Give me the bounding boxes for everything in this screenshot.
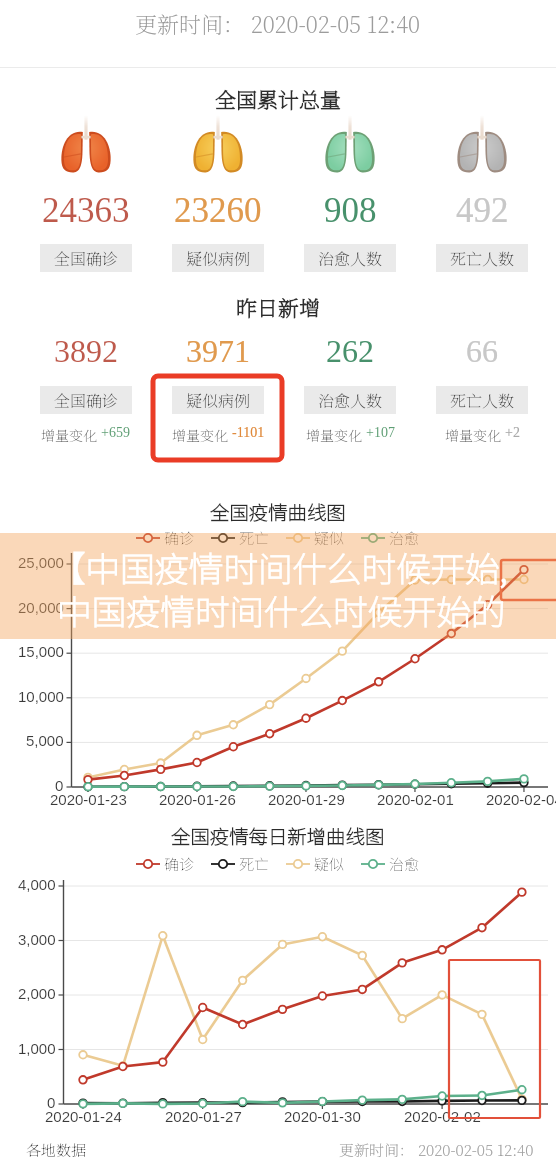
staticText: 治愈 <box>389 527 420 549</box>
staticText: +107 <box>366 425 395 441</box>
staticText: 死亡人数 <box>450 247 515 270</box>
staticText: 2020-01-27 <box>165 1108 242 1125</box>
staticText: 更新时间： 2020-02-05 12:40 <box>135 8 421 40</box>
staticText: 2020-01-26 <box>159 791 236 808</box>
staticText: 0 <box>47 1094 56 1111</box>
staticText: 昨日新增 <box>236 292 320 322</box>
staticText: 疑似病例 <box>186 389 251 412</box>
staticText: 2020-01-24 <box>45 1108 122 1125</box>
staticText: 疑似 <box>314 853 345 875</box>
staticText: 5,000 <box>26 732 64 749</box>
button[interactable]: 治愈人数 <box>284 115 416 272</box>
staticText: 20,000 <box>18 599 64 616</box>
staticText: 死亡 <box>239 853 270 875</box>
staticText: 15,000 <box>18 643 64 660</box>
staticText: 262 <box>326 333 374 368</box>
staticText: 中国疫情时间什么时候开始的 <box>57 585 506 635</box>
staticText: 疑似病例 <box>186 247 251 270</box>
staticText: 【中国疫情时间什么时候开始, <box>51 542 508 592</box>
staticText: 3971 <box>186 333 250 368</box>
staticText: 2020-01-23 <box>50 791 127 808</box>
staticText: 2,000 <box>18 985 56 1002</box>
staticText: 疑似 <box>314 527 345 549</box>
other: 全国确诊 <box>57 115 115 185</box>
button[interactable]: 确诊 <box>136 527 195 549</box>
button[interactable]: 疑似病例 <box>152 115 284 272</box>
staticText: 492 <box>456 191 509 230</box>
staticText: 治愈人数 <box>318 247 383 270</box>
button[interactable]: 各地数据 <box>26 1139 87 1161</box>
button[interactable]: 3971 <box>152 329 284 445</box>
button[interactable]: 66 <box>416 329 548 445</box>
button[interactable]: 死亡 <box>211 527 270 549</box>
staticText: 24363 <box>42 191 130 230</box>
other: 死亡人数 <box>453 115 511 185</box>
staticText: 23260 <box>174 191 262 230</box>
staticText: 0 <box>55 777 64 794</box>
button[interactable]: 治愈 <box>361 853 420 875</box>
other: 疑似病例 <box>189 115 247 185</box>
staticText: 确诊 <box>164 527 195 549</box>
staticText: 25,000 <box>18 554 64 571</box>
staticText: 2020-02-04 <box>486 791 556 808</box>
staticText: 增量变化 <box>172 425 232 445</box>
button[interactable]: 3892 <box>19 329 152 445</box>
staticText: 增量变化 <box>445 425 505 445</box>
staticText: 治愈 <box>389 853 420 875</box>
button[interactable]: 死亡人数 <box>416 115 548 272</box>
staticText: 2020-01-30 <box>284 1108 361 1125</box>
staticText: 908 <box>324 191 377 230</box>
staticText: 3,000 <box>18 931 56 948</box>
button[interactable]: 疑似 <box>286 853 345 875</box>
staticText: 全国疫情曲线图 <box>210 497 346 525</box>
staticText: 全国确诊 <box>54 389 119 412</box>
button[interactable]: 262 <box>284 329 416 445</box>
staticText: +2 <box>505 425 520 441</box>
button[interactable]: 疑似 <box>286 527 345 549</box>
staticText: +659 <box>101 425 130 441</box>
staticText: 2020-02-02 <box>404 1108 481 1125</box>
button[interactable]: 确诊 <box>136 853 195 875</box>
staticText: 全国疫情每日新增曲线图 <box>171 821 385 849</box>
staticText: 4,000 <box>18 876 56 893</box>
staticText: 治愈人数 <box>318 389 383 412</box>
staticText: 66 <box>466 333 498 368</box>
staticText: 10,000 <box>18 688 64 705</box>
staticText: 增量变化 <box>41 425 101 445</box>
staticText: 确诊 <box>164 853 195 875</box>
staticText: 全国确诊 <box>54 247 119 270</box>
staticText: 死亡人数 <box>450 389 515 412</box>
staticText: 死亡 <box>239 527 270 549</box>
staticText: -1101 <box>232 425 265 441</box>
staticText: 增量变化 <box>306 425 366 445</box>
staticText: 更新时间： 2020-02-05 12:40 <box>339 1139 534 1161</box>
staticText: 2020-01-29 <box>268 791 345 808</box>
staticText: 2020-02-01 <box>377 791 454 808</box>
button[interactable]: 死亡 <box>211 853 270 875</box>
other: 治愈人数 <box>321 115 379 185</box>
button[interactable]: 全国确诊 <box>19 115 152 272</box>
staticText: 1,000 <box>18 1040 56 1057</box>
button[interactable]: 治愈 <box>361 527 420 549</box>
staticText: 3892 <box>54 333 118 368</box>
staticText: 全国累计总量 <box>215 84 341 114</box>
